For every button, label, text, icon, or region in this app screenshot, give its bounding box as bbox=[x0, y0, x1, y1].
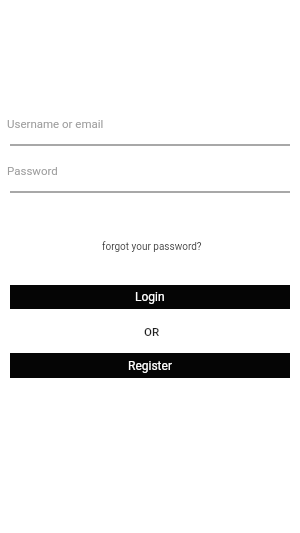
button[interactable]: Register bbox=[10, 353, 290, 378]
button[interactable]: Login bbox=[10, 285, 290, 309]
staticText: Password bbox=[7, 164, 58, 177]
button[interactable]: Username or email bbox=[0, 112, 300, 148]
button[interactable]: forgot your password? bbox=[2, 238, 300, 256]
staticText: OR bbox=[144, 325, 160, 338]
staticText: Username or email bbox=[7, 117, 104, 130]
staticText: Login bbox=[135, 290, 165, 304]
staticText: forgot your password? bbox=[102, 241, 202, 253]
staticText: Register bbox=[128, 359, 172, 373]
button[interactable]: Password bbox=[0, 159, 300, 195]
